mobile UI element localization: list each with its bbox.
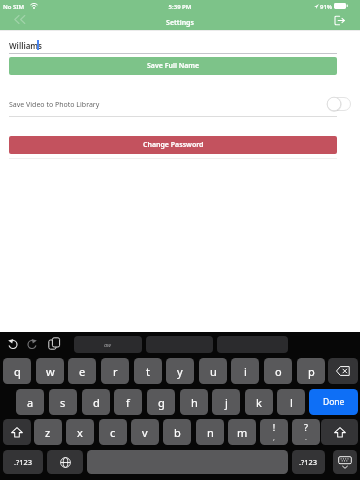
- staticText: Save Video to Photo Library: [9, 100, 100, 110]
- staticText: h: [191, 395, 198, 410]
- button[interactable]: a: [16, 389, 44, 415]
- button[interactable]: w: [36, 358, 64, 384]
- button[interactable]: ?: [292, 419, 320, 445]
- button[interactable]: [333, 450, 357, 474]
- staticText: Done: [323, 396, 345, 408]
- staticText: l: [290, 395, 293, 410]
- staticText: Save Full Name: [147, 61, 200, 71]
- staticText: aw: [104, 341, 112, 348]
- staticText: m: [237, 425, 248, 440]
- staticText: n: [207, 425, 214, 440]
- button[interactable]: n: [196, 419, 224, 445]
- button[interactable]: z: [34, 419, 62, 445]
- staticText: v: [142, 425, 148, 440]
- button[interactable]: [27, 339, 38, 349]
- button[interactable]: d: [82, 389, 110, 415]
- button[interactable]: aw: [74, 336, 142, 353]
- button[interactable]: Done: [309, 389, 358, 415]
- button[interactable]: [321, 419, 358, 445]
- button[interactable]: s: [49, 389, 77, 415]
- staticText: 5:39 PM: [0, 3, 360, 11]
- staticText: z: [45, 425, 51, 440]
- button[interactable]: b: [163, 419, 191, 445]
- button[interactable]: o: [264, 358, 292, 384]
- staticText: u: [210, 364, 217, 379]
- button[interactable]: Change Password: [9, 136, 337, 154]
- button[interactable]: c: [99, 419, 127, 445]
- button[interactable]: m: [228, 419, 256, 445]
- button[interactable]: [7, 339, 18, 349]
- button[interactable]: [47, 450, 83, 474]
- button[interactable]: r: [101, 358, 129, 384]
- button[interactable]: h: [180, 389, 208, 415]
- button[interactable]: [48, 337, 61, 350]
- staticText: .?123: [299, 457, 318, 467]
- button[interactable]: e: [68, 358, 96, 384]
- staticText: Settings: [0, 18, 360, 28]
- button[interactable]: .?123: [292, 450, 325, 474]
- button[interactable]: k: [245, 389, 273, 415]
- staticText: o: [275, 364, 282, 379]
- staticText: r: [113, 364, 118, 379]
- button[interactable]: l: [277, 389, 305, 415]
- button[interactable]: [327, 97, 351, 111]
- staticText: f: [126, 395, 130, 410]
- staticText: No SIM: [3, 3, 25, 11]
- button[interactable]: v: [131, 419, 159, 445]
- button[interactable]: x: [66, 419, 94, 445]
- staticText: ,: [260, 433, 288, 443]
- button[interactable]: q: [3, 358, 31, 384]
- button[interactable]: g: [147, 389, 175, 415]
- staticText: Change Password: [143, 140, 204, 150]
- staticText: c: [110, 425, 116, 440]
- button[interactable]: y: [166, 358, 194, 384]
- staticText: s: [60, 395, 66, 410]
- button[interactable]: [3, 419, 31, 445]
- button[interactable]: i: [231, 358, 259, 384]
- staticText: b: [174, 425, 181, 440]
- button[interactable]: f: [114, 389, 142, 415]
- staticText: k: [256, 395, 262, 410]
- button[interactable]: u: [199, 358, 227, 384]
- staticText: t: [146, 364, 150, 379]
- button[interactable]: .?123: [3, 450, 43, 474]
- button[interactable]: p: [297, 358, 325, 384]
- staticText: y: [177, 364, 183, 379]
- button[interactable]: [217, 336, 288, 353]
- button[interactable]: t: [134, 358, 162, 384]
- button[interactable]: Save Full Name: [9, 57, 337, 75]
- button[interactable]: [14, 15, 26, 24]
- button[interactable]: [146, 336, 213, 353]
- staticText: .?123: [14, 457, 33, 467]
- staticText: j: [225, 395, 228, 410]
- button[interactable]: [328, 358, 358, 384]
- staticText: i: [244, 364, 247, 379]
- staticText: x: [77, 425, 83, 440]
- staticText: a: [27, 395, 34, 410]
- button[interactable]: [87, 450, 288, 474]
- staticText: ?: [292, 421, 320, 433]
- staticText: g: [158, 395, 165, 410]
- staticText: !: [260, 421, 288, 433]
- button[interactable]: !: [260, 419, 288, 445]
- button[interactable]: j: [212, 389, 240, 415]
- staticText: e: [79, 364, 86, 379]
- staticText: q: [14, 364, 21, 379]
- staticText: Williams: [9, 40, 42, 51]
- staticText: w: [46, 364, 55, 379]
- staticText: d: [93, 395, 100, 410]
- staticText: .: [292, 433, 320, 443]
- staticText: 91%: [320, 3, 333, 11]
- button[interactable]: [333, 15, 346, 26]
- staticText: p: [308, 364, 315, 379]
